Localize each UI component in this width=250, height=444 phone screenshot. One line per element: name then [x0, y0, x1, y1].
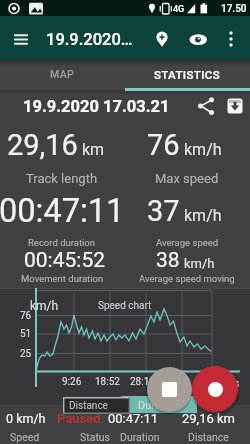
button[interactable]: [0, 405, 62, 444]
staticText: 37: [147, 194, 180, 228]
button[interactable]: [222, 92, 250, 120]
button[interactable]: [192, 366, 238, 412]
staticText: Average speed: [156, 237, 219, 248]
staticText: 76: [147, 128, 180, 162]
staticText: 4G: [173, 4, 185, 15]
staticText: Track length: [26, 171, 98, 186]
staticText: km/h: [184, 256, 215, 271]
button[interactable]: [178, 405, 250, 444]
staticText: 0 km/h: [6, 411, 46, 426]
staticText: Duration: [120, 431, 160, 443]
staticText: s: [234, 378, 240, 390]
staticText: 00:47:11: [0, 192, 125, 230]
staticText: Distance: [188, 431, 229, 443]
staticText: STATISTICS: [154, 68, 221, 81]
staticText: 9:26: [62, 376, 82, 388]
staticText: km/h: [184, 140, 222, 159]
staticText: 19.9.2020 17.03.21: [23, 97, 170, 116]
staticText: 38: [156, 248, 180, 273]
staticText: 76: [20, 310, 32, 322]
staticText: Movement duration: [21, 273, 104, 284]
button[interactable]: [184, 24, 214, 54]
staticText: km/h: [30, 299, 59, 313]
staticText: Max speed: [155, 171, 219, 186]
staticText: Distance: [69, 400, 108, 412]
staticText: Speed chart: [98, 300, 152, 312]
staticText: 29,16: [7, 128, 78, 162]
staticText: 18:52: [95, 376, 120, 388]
button[interactable]: [148, 24, 178, 54]
button[interactable]: [218, 24, 246, 54]
staticText: Paused: [57, 411, 101, 426]
staticText: Average speed moving: [139, 273, 235, 284]
button[interactable]: [115, 405, 178, 444]
staticText: 00:47:11: [108, 411, 159, 426]
staticText: 51: [20, 328, 32, 340]
button[interactable]: [125, 60, 250, 90]
button[interactable]: [192, 92, 220, 120]
staticText: Duration: [138, 399, 180, 412]
button[interactable]: [0, 60, 125, 90]
staticText: Speed: [10, 431, 40, 443]
staticText: Status: [80, 431, 111, 443]
staticText: MAP: [50, 68, 75, 80]
staticText: 25: [20, 348, 32, 360]
button[interactable]: [62, 405, 115, 444]
staticText: 00:45:52: [24, 248, 105, 273]
staticText: 17.50: [221, 3, 247, 15]
staticText: km/h: [184, 206, 222, 225]
staticText: 19.9.2020…: [46, 30, 133, 49]
staticText: 29,16 km: [182, 411, 235, 426]
staticText: 28:19: [130, 376, 155, 388]
button[interactable]: [6, 24, 38, 54]
button[interactable]: [147, 367, 192, 412]
staticText: Record duration: [28, 237, 96, 248]
staticText: km: [82, 140, 105, 159]
